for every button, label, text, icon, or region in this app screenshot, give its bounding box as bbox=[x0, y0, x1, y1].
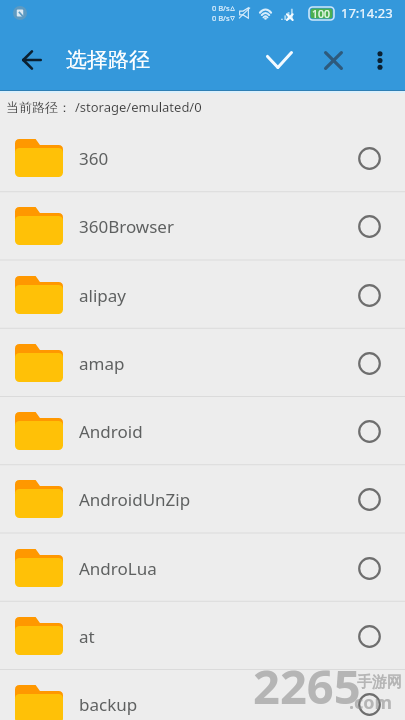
button[interactable]: amap bbox=[0, 329, 405, 397]
staticText: alipay bbox=[79, 284, 126, 307]
button[interactable]: Cancel bbox=[311, 28, 355, 92]
staticText: backup bbox=[79, 693, 138, 716]
staticText: at bbox=[79, 625, 95, 648]
staticText: 选择路径 bbox=[66, 47, 150, 73]
staticText: 2265 bbox=[253, 654, 361, 718]
staticText: /storage/emulated/0 bbox=[75, 98, 202, 116]
button[interactable]: Android bbox=[0, 397, 405, 465]
button[interactable]: backup bbox=[0, 670, 405, 720]
staticText: 360Browser bbox=[79, 215, 174, 238]
staticText: AndroidUnZip bbox=[79, 488, 191, 511]
staticText: 100 bbox=[312, 7, 331, 20]
button[interactable]: Back bbox=[0, 28, 64, 92]
staticText: AndroLua bbox=[79, 557, 157, 580]
staticText: 0 B/s bbox=[212, 3, 230, 13]
staticText: amap bbox=[79, 352, 125, 375]
button[interactable]: 360 bbox=[0, 124, 405, 192]
staticText: 17:14:23 bbox=[341, 4, 393, 22]
button[interactable]: 360Browser bbox=[0, 192, 405, 260]
button[interactable]: More options bbox=[355, 28, 405, 92]
staticText: 360 bbox=[79, 147, 109, 170]
button[interactable]: at bbox=[0, 602, 405, 670]
button[interactable]: AndroLua bbox=[0, 534, 405, 602]
staticText: .com bbox=[349, 690, 393, 715]
staticText: 手游网 bbox=[357, 673, 402, 692]
button[interactable]: AndroidUnZip bbox=[0, 465, 405, 533]
staticText: 当前路径： bbox=[6, 99, 71, 115]
button[interactable]: alipay bbox=[0, 261, 405, 329]
staticText: Android bbox=[79, 420, 143, 443]
staticText: 0 B/s bbox=[212, 13, 230, 23]
button[interactable]: Confirm bbox=[247, 28, 311, 92]
